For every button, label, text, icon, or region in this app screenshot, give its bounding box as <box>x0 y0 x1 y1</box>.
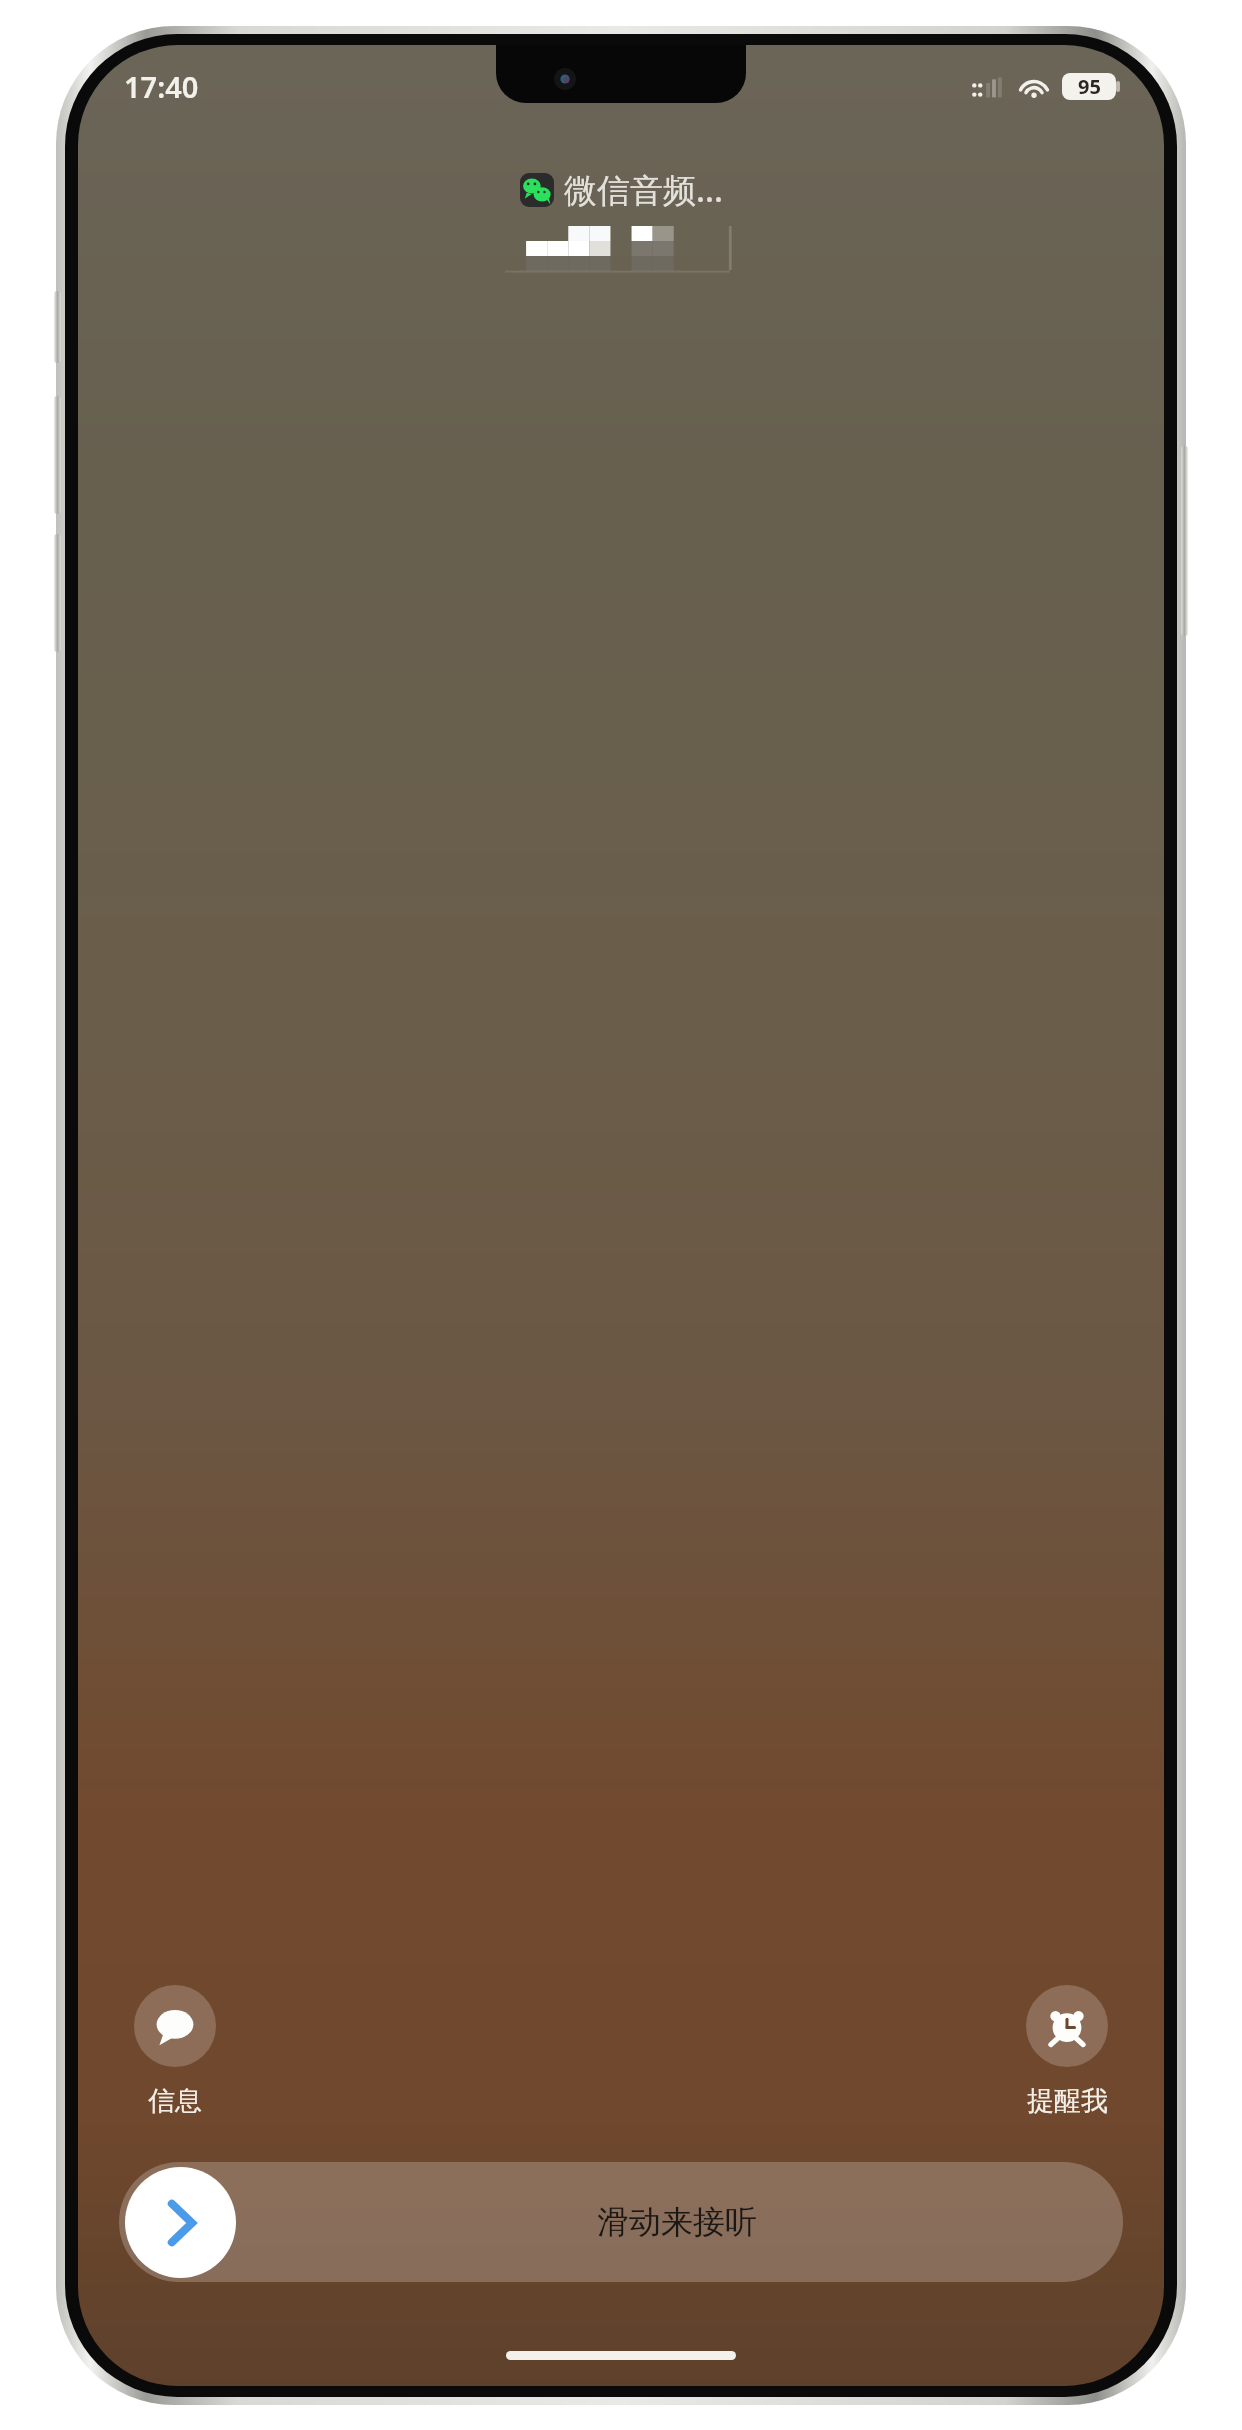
other: Answer <box>125 2167 236 2278</box>
other: Volume up <box>54 396 61 514</box>
staticText: 信息 <box>148 2084 202 2118</box>
staticText: 17:40 <box>124 67 199 106</box>
other: Volume down <box>54 534 61 652</box>
other: Side button <box>1181 446 1188 636</box>
staticText: 提醒我 <box>1027 2084 1108 2118</box>
staticText: 95 <box>1078 73 1101 100</box>
button[interactable]: 滑动来接听 <box>119 2162 1123 2282</box>
staticText: 滑动来接听 <box>231 2202 1123 2242</box>
other: Message <box>134 1985 216 2067</box>
other: Remind me <box>1026 1985 1108 2067</box>
other: Silent switch <box>54 291 61 363</box>
button[interactable]: Message <box>134 1985 216 2118</box>
button[interactable]: Remind me <box>1026 1985 1108 2118</box>
staticText: 微信音频... <box>564 167 723 212</box>
